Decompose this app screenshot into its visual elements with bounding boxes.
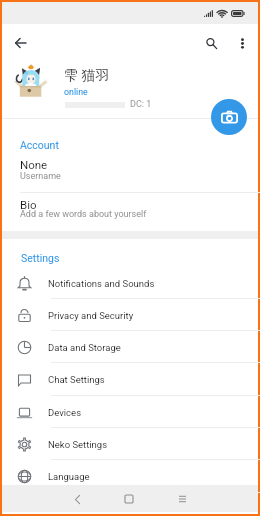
- button[interactable]: Devices: [2, 396, 258, 428]
- button[interactable]: Neko Settings: [2, 428, 258, 460]
- staticText: Chat Settings: [48, 374, 105, 385]
- staticText: Account: [20, 139, 59, 151]
- button[interactable]: Bio: [2, 193, 258, 231]
- staticText: Privacy and Security: [48, 310, 134, 321]
- button[interactable]: Search: [195, 27, 227, 59]
- button[interactable]: More options: [226, 27, 258, 59]
- button[interactable]: [13, 64, 48, 99]
- button[interactable]: Notifications and Sounds: [2, 267, 258, 299]
- staticText: online: [64, 87, 88, 97]
- button[interactable]: Data and Storage: [2, 331, 258, 363]
- button[interactable]: Recent apps: [169, 486, 195, 512]
- staticText: Devices: [48, 407, 82, 418]
- button[interactable]: Set profile photo: [211, 99, 247, 135]
- staticText: Neko Settings: [48, 439, 108, 450]
- staticText: Language: [48, 471, 90, 482]
- staticText: Add a few words about yourself: [20, 209, 147, 220]
- staticText: Notifications and Sounds: [48, 278, 155, 289]
- staticText: 雫 猫羽: [64, 67, 110, 85]
- staticText: Data and Storage: [48, 342, 121, 353]
- staticText: Settings: [21, 252, 60, 264]
- button[interactable]: Back: [64, 486, 90, 512]
- button[interactable]: Language: [2, 460, 258, 492]
- staticText: Bio: [20, 198, 37, 211]
- button[interactable]: Back: [4, 27, 36, 59]
- button[interactable]: Chat Settings: [2, 363, 258, 395]
- button[interactable]: Privacy and Security: [2, 299, 258, 331]
- button[interactable]: None: [2, 152, 258, 191]
- staticText: None: [20, 158, 48, 171]
- staticText: DC: 1: [130, 99, 152, 110]
- button[interactable]: Home: [116, 486, 142, 512]
- staticText: Username: [20, 171, 61, 182]
